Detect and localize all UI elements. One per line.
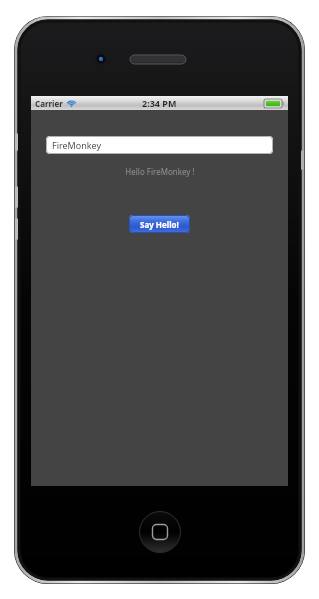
button[interactable]: FireMonkey — [46, 136, 273, 154]
staticText: 2:34 PM — [142, 97, 177, 109]
staticText: FireMonkey — [52, 139, 102, 151]
staticText: Say Hello! — [140, 219, 179, 230]
staticText: Carrier — [35, 98, 63, 109]
button[interactable]: Say Hello! — [129, 215, 190, 233]
staticText: Hello FireMonkey ! — [125, 166, 195, 177]
